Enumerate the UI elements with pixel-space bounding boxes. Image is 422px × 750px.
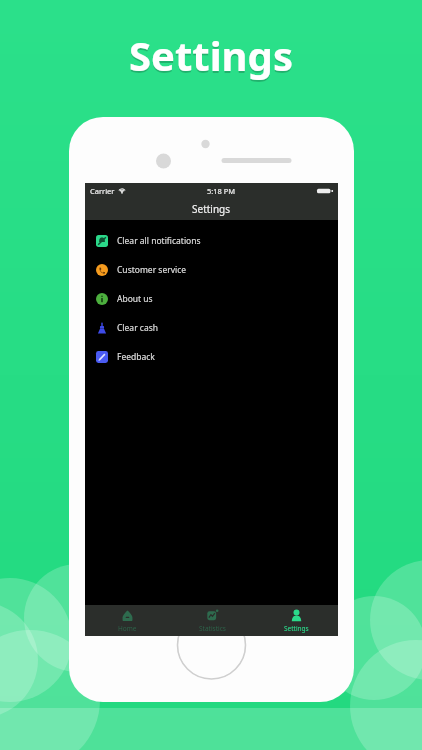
staticText: Statistics [199, 624, 226, 633]
staticText: Settings [129, 28, 293, 82]
staticText: Settings [284, 624, 309, 633]
staticText: Carrier [90, 186, 115, 196]
staticText: Settings [192, 202, 231, 216]
button[interactable]: Feedback [85, 342, 338, 371]
button[interactable]: Customer service [85, 255, 338, 284]
button[interactable]: About us [85, 284, 338, 313]
button[interactable]: Settings [254, 605, 338, 636]
button[interactable]: Clear cash [85, 313, 338, 342]
staticText: Feedback [117, 351, 155, 363]
button[interactable]: Clear all notifications [85, 226, 338, 255]
staticText: Customer service [117, 264, 187, 276]
staticText: About us [117, 293, 153, 305]
staticText: 5:18 PM [207, 186, 236, 196]
staticText: Clear cash [117, 322, 159, 334]
staticText: Clear all notifications [117, 235, 201, 247]
staticText: Home [118, 624, 137, 633]
staticText: Settings [129, 30, 293, 84]
button[interactable]: Home [85, 605, 170, 636]
button[interactable]: Statistics [170, 605, 254, 636]
